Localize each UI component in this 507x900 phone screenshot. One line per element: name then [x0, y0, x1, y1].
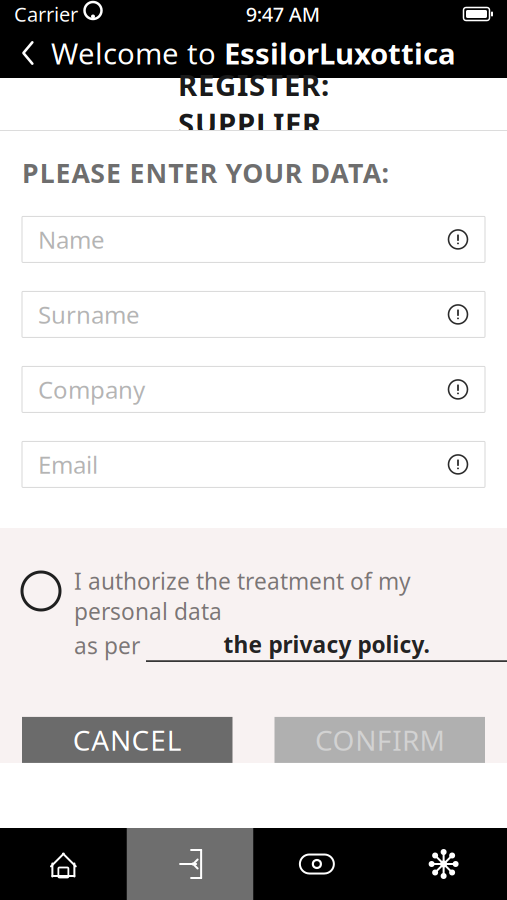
- button[interactable]: View: [253, 828, 380, 900]
- button[interactable]: Register: [127, 828, 254, 900]
- staticText: as per: [74, 630, 140, 661]
- button[interactable]: Email: [22, 441, 485, 487]
- button[interactable]: Name: [22, 216, 485, 262]
- staticText: REGISTER: SUPPLIER: [178, 65, 329, 143]
- staticText: Welcome to: [51, 33, 224, 72]
- button[interactable]: Authorize data treatment: [22, 566, 60, 610]
- button[interactable]: the privacy policy.: [146, 629, 507, 662]
- staticText: CONFIRM: [315, 721, 445, 758]
- button[interactable]: Back: [0, 28, 56, 78]
- button[interactable]: CANCEL: [22, 717, 232, 763]
- staticText: I authorize the treatment of my personal…: [74, 566, 411, 626]
- button[interactable]: Surname: [22, 291, 485, 337]
- staticText: the privacy policy.: [223, 629, 429, 659]
- staticText: EssilorLuxottica: [224, 33, 456, 72]
- button[interactable]: CONFIRM: [274, 717, 485, 763]
- staticText: PLEASE ENTER YOUR DATA:: [22, 155, 389, 190]
- staticText: Surname: [38, 298, 140, 330]
- button[interactable]: Home: [0, 828, 127, 900]
- staticText: CANCEL: [73, 721, 182, 758]
- staticText: 9:47 AM: [246, 1, 320, 27]
- staticText: Email: [38, 448, 98, 480]
- staticText: Name: [38, 223, 105, 255]
- staticText: Carrier: [14, 1, 78, 27]
- button[interactable]: Company: [22, 366, 485, 412]
- button[interactable]: Network: [380, 828, 507, 900]
- staticText: Company: [38, 373, 145, 405]
